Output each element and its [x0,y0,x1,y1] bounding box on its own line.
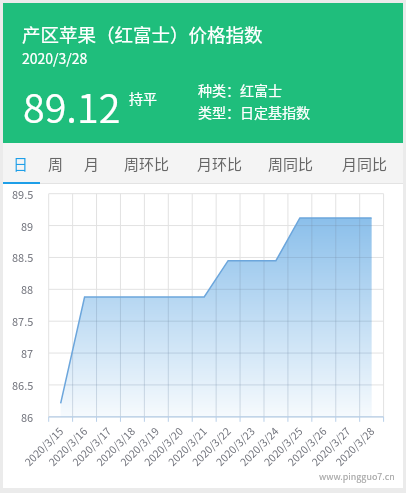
staticText: 日 [13,153,29,175]
button[interactable]: 月同比 [326,143,403,184]
staticText: 月环比 [197,153,243,175]
button[interactable]: 周同比 [256,143,326,184]
staticText: 周环比 [124,153,170,175]
button[interactable]: 月 [73,143,110,184]
staticText: 周同比 [268,153,314,175]
staticText: 周 [48,153,64,175]
staticText: 产区苹果（红富士）价格指数 [22,21,263,48]
staticText: 种类：红富士 [198,80,282,100]
staticText: 持平 [129,88,157,108]
button[interactable]: 周 [39,143,73,184]
staticText: 类型：日定基指数 [198,102,310,122]
staticText: 月同比 [342,153,388,175]
staticText: 89.12 [23,77,121,134]
button[interactable]: 月环比 [184,143,256,184]
button[interactable]: 周环比 [110,143,184,184]
staticText: 2020/3/28 [22,48,88,68]
button[interactable]: 日 [3,143,39,184]
staticText: 月 [84,153,100,175]
